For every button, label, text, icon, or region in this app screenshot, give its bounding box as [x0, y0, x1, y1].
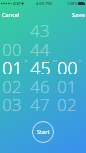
- button[interactable]: 43: [27, 19, 53, 37]
- button[interactable]: 46: [27, 75, 53, 93]
- staticText: 00: [2, 38, 22, 56]
- staticText: 4:00 PM: [36, 1, 52, 7]
- button[interactable]: 03: [0, 93, 25, 111]
- button[interactable]: 01: [0, 56, 25, 74]
- staticText: AT&T: [13, 1, 22, 6]
- staticText: Save: [72, 11, 85, 19]
- button[interactable]: 00: [54, 56, 80, 74]
- staticText: 44: [30, 38, 50, 56]
- staticText: h: [25, 58, 28, 63]
- staticText: Cancel: [2, 11, 20, 19]
- staticText: 100%: [67, 1, 78, 7]
- button[interactable]: 02: [0, 75, 25, 93]
- staticText: 45: [30, 56, 51, 74]
- button[interactable]: Cancel: [0, 8, 23, 22]
- staticText: 43: [30, 19, 50, 37]
- button[interactable]: 45: [27, 56, 53, 74]
- staticText: 46: [30, 75, 50, 93]
- staticText: Start: [37, 128, 50, 136]
- button[interactable]: 47: [27, 93, 53, 111]
- button[interactable]: 00: [0, 38, 25, 56]
- button[interactable]: 44: [27, 38, 53, 56]
- staticText: s: [79, 58, 81, 63]
- button[interactable]: 02: [54, 93, 80, 111]
- staticText: 02: [57, 93, 77, 111]
- button[interactable]: Save: [69, 8, 86, 22]
- staticText: 03: [2, 93, 22, 111]
- button[interactable]: Start: [32, 121, 54, 143]
- staticText: 00: [57, 56, 78, 74]
- staticText: 01: [57, 75, 77, 93]
- staticText: 02: [2, 75, 22, 93]
- staticText: m: [53, 58, 57, 63]
- button[interactable]: 01: [54, 75, 80, 93]
- staticText: 01: [2, 56, 23, 74]
- staticText: 47: [30, 93, 50, 111]
